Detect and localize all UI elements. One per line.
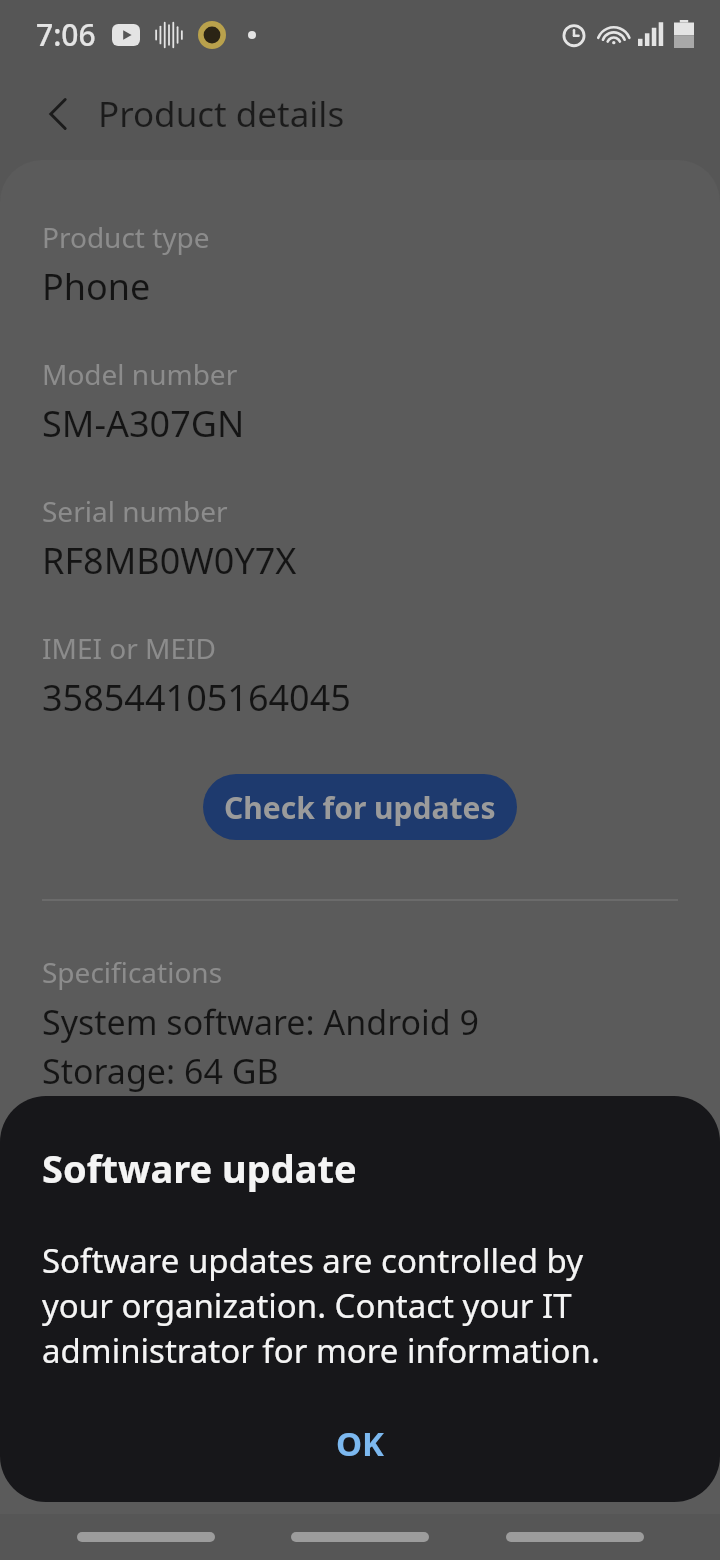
staticText: Product type [42,218,210,256]
button[interactable]: Home [291,1532,429,1542]
button[interactable]: Recents [77,1532,215,1542]
staticText: 358544105164045 [42,673,351,722]
button[interactable]: Back [506,1532,644,1542]
staticText: Model number [42,355,238,393]
staticText: Product details [98,90,345,138]
staticText: OK [336,1421,385,1466]
staticText: Software update [42,1142,357,1194]
staticText: Check for updates [224,787,496,828]
button[interactable]: Check for updates [203,774,517,840]
staticText: Serial number [42,492,228,530]
button[interactable]: OK [292,1411,429,1476]
staticText: RF8MB0W0Y7X [42,536,297,585]
staticText: System software: Android 9 Storage: 64 G… [42,999,689,1334]
staticText: Software updates are controlled by your … [42,1238,660,1373]
button[interactable]: Back [30,86,86,142]
staticText: 7:06 [36,14,96,55]
staticText: Specifications [42,953,223,991]
staticText: SM-A307GN [42,399,245,448]
staticText: IMEI or MEID [42,629,216,667]
staticText: Phone [42,262,151,311]
